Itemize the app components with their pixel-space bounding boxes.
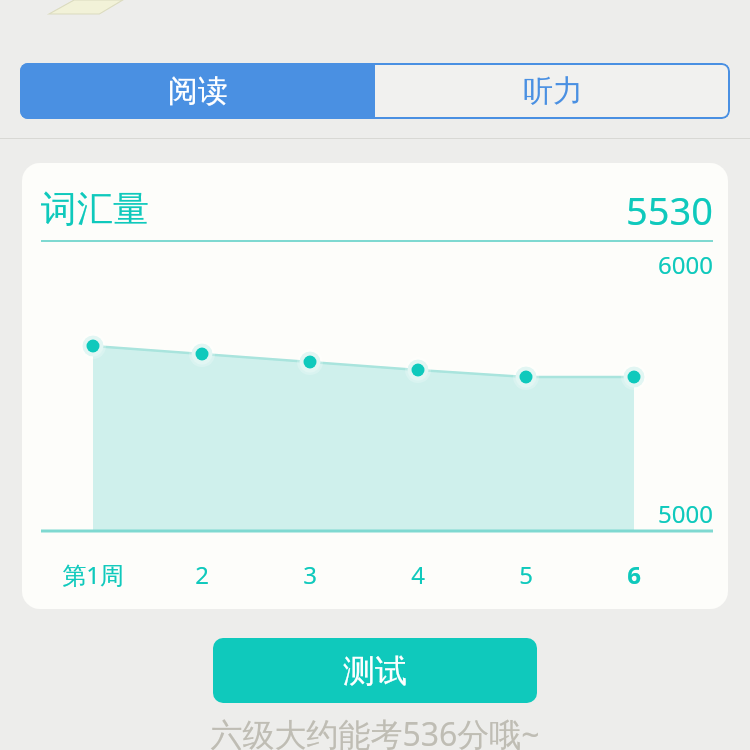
staticText: 5000 — [22, 497, 713, 530]
staticText: 听力 — [523, 72, 583, 110]
staticText: 3 — [303, 558, 317, 591]
staticText: 测试 — [343, 651, 407, 691]
staticText: 词汇量 — [41, 186, 149, 231]
button[interactable]: 阅读 — [20, 63, 375, 119]
staticText: 5530 — [22, 184, 713, 236]
staticText: 6 — [627, 558, 641, 591]
staticText: 6000 — [22, 248, 713, 281]
staticText: 2 — [195, 558, 209, 591]
staticText: 六级大约能考536分哦~ — [210, 712, 540, 750]
button[interactable]: 听力 — [375, 63, 730, 119]
button[interactable]: 测试 — [213, 638, 537, 703]
staticText: 4 — [411, 558, 425, 591]
staticText: 5 — [519, 558, 533, 591]
staticText: 阅读 — [168, 72, 228, 110]
staticText: 第1周 — [62, 558, 124, 591]
